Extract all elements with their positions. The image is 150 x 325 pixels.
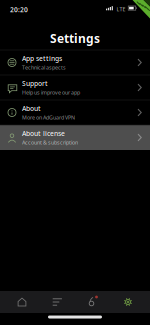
button[interactable]: News [76, 291, 110, 313]
staticText: Account & subscription [22, 139, 78, 146]
staticText: Support [22, 79, 48, 88]
staticText: App settings [22, 54, 62, 63]
staticText: 20:20 [10, 5, 28, 14]
staticText: LTE [116, 6, 125, 13]
button[interactable]: App settings [0, 50, 150, 75]
button[interactable]: Settings [111, 291, 145, 313]
button[interactable]: Home [5, 291, 39, 313]
staticText: Help us improve our app [22, 89, 80, 96]
button[interactable]: Locations [40, 291, 74, 313]
button[interactable]: Support [0, 75, 150, 100]
staticText: About [22, 104, 41, 113]
staticText: More on AdGuard VPN [22, 114, 75, 121]
staticText: Settings [50, 30, 100, 46]
button[interactable]: About license [0, 125, 150, 150]
button[interactable]: About [0, 100, 150, 125]
staticText: Technical aspects [22, 64, 66, 71]
staticText: About license [22, 129, 65, 138]
